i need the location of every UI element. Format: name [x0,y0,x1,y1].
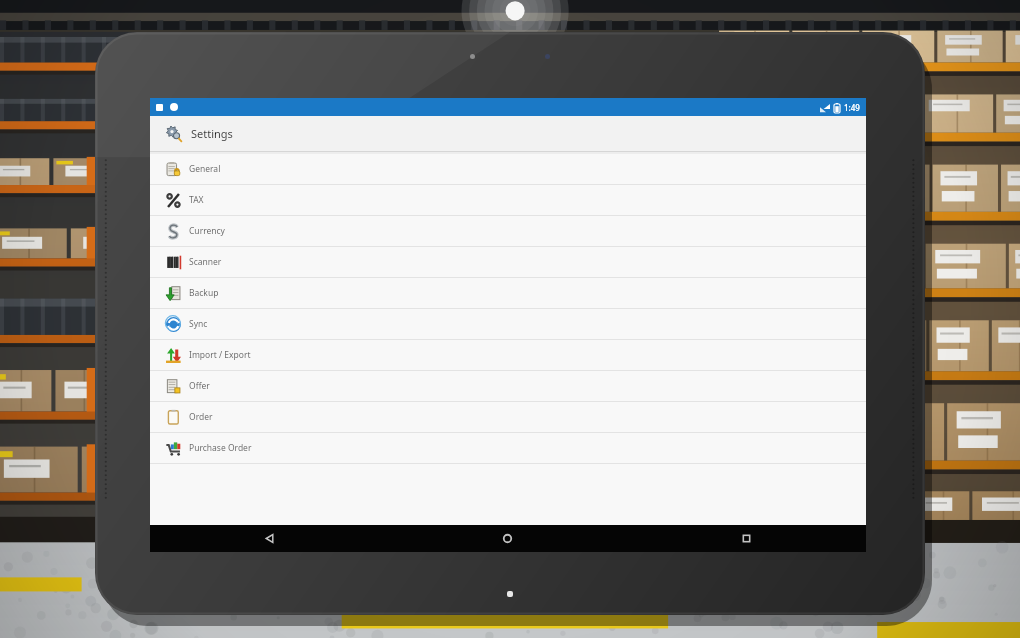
staticText: General [189,163,221,175]
button[interactable]: Settings [150,116,866,154]
button[interactable]: Backup [150,278,866,309]
button[interactable]: Back [150,525,388,552]
staticText: Backup [189,287,219,299]
staticText: Sync [189,318,208,330]
button[interactable]: Recent apps [627,525,866,552]
button[interactable]: Offer [150,371,866,402]
staticText: Order [189,411,213,423]
button[interactable]: Scanner [150,247,866,278]
staticText: Scanner [189,256,222,268]
button[interactable]: General [150,154,866,185]
staticText: Offer [189,380,210,392]
staticText: 1:49 [844,102,860,113]
button[interactable]: Currency [150,216,866,247]
button[interactable]: Purchase Order [150,433,866,464]
button[interactable]: TAX [150,185,866,216]
button[interactable]: Import / Export [150,340,866,371]
staticText: Purchase Order [189,442,252,454]
button[interactable]: Order [150,402,866,433]
button[interactable]: Home [388,525,627,552]
staticText: TAX [189,194,204,206]
staticText: Currency [189,225,225,237]
staticText: Settings [191,126,233,141]
staticText: Import / Export [189,349,251,361]
button[interactable]: Sync [150,309,866,340]
